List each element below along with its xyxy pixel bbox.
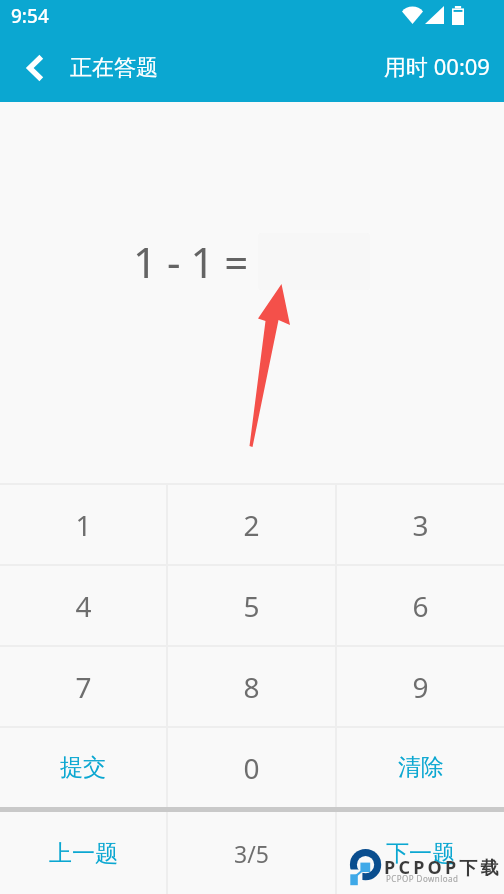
staticText: 下一题 (386, 839, 455, 868)
button[interactable]: 4 (0, 566, 166, 645)
button[interactable]: 下一题 (337, 812, 504, 894)
button[interactable]: 清除 (337, 728, 504, 807)
staticText: 1 (75, 506, 92, 544)
staticText: 清除 (398, 753, 444, 782)
button[interactable]: 5 (168, 566, 335, 645)
staticText: 3/5 (234, 838, 269, 869)
staticText: 9 (412, 668, 429, 706)
button[interactable]: 9 (337, 647, 504, 726)
button[interactable]: 8 (168, 647, 335, 726)
button[interactable]: 上一题 (0, 812, 166, 894)
button[interactable]: 3/5 (168, 812, 335, 894)
button[interactable]: 6 (337, 566, 504, 645)
staticText: 提交 (60, 753, 106, 782)
staticText: PCPOP下载 (384, 855, 502, 880)
staticText: PCPOP Download (386, 873, 459, 884)
staticText: 正在答题 (70, 54, 158, 82)
staticText: 2 (243, 506, 260, 544)
staticText: 1 - 1 = (133, 233, 248, 290)
button[interactable]: 3 (337, 485, 504, 564)
button[interactable]: 7 (0, 647, 166, 726)
button[interactable]: 0 (168, 728, 335, 807)
button[interactable]: 1 (0, 485, 166, 564)
staticText: 6 (412, 587, 429, 625)
staticText: 用时 00:09 (384, 51, 490, 81)
button[interactable]: 2 (168, 485, 335, 564)
staticText: 7 (75, 668, 92, 706)
staticText: 上一题 (49, 839, 118, 868)
staticText: 3 (412, 506, 429, 544)
staticText: 4 (75, 587, 92, 625)
staticText: 8 (243, 668, 260, 706)
button[interactable]: 提交 (0, 728, 166, 807)
staticText: 5 (243, 587, 260, 625)
staticText: 9:54 (11, 3, 49, 29)
button[interactable]: 返回 (7, 39, 64, 96)
staticText: 0 (243, 749, 260, 787)
